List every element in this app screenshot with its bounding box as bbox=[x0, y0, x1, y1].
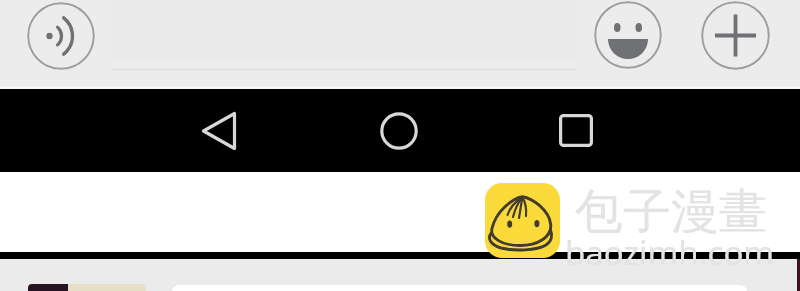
button[interactable]: Voice message bbox=[27, 2, 95, 70]
button[interactable]: Back bbox=[175, 89, 263, 172]
button[interactable]: Emoji bbox=[594, 1, 662, 69]
button[interactable]: More bbox=[701, 1, 770, 70]
staticText: baozimh.com bbox=[565, 230, 775, 275]
button[interactable]: Recent apps bbox=[532, 89, 620, 172]
button[interactable]: Home bbox=[355, 89, 443, 172]
staticText: 包子漫畫 bbox=[575, 182, 767, 242]
button[interactable]: Chat message bbox=[0, 259, 800, 291]
